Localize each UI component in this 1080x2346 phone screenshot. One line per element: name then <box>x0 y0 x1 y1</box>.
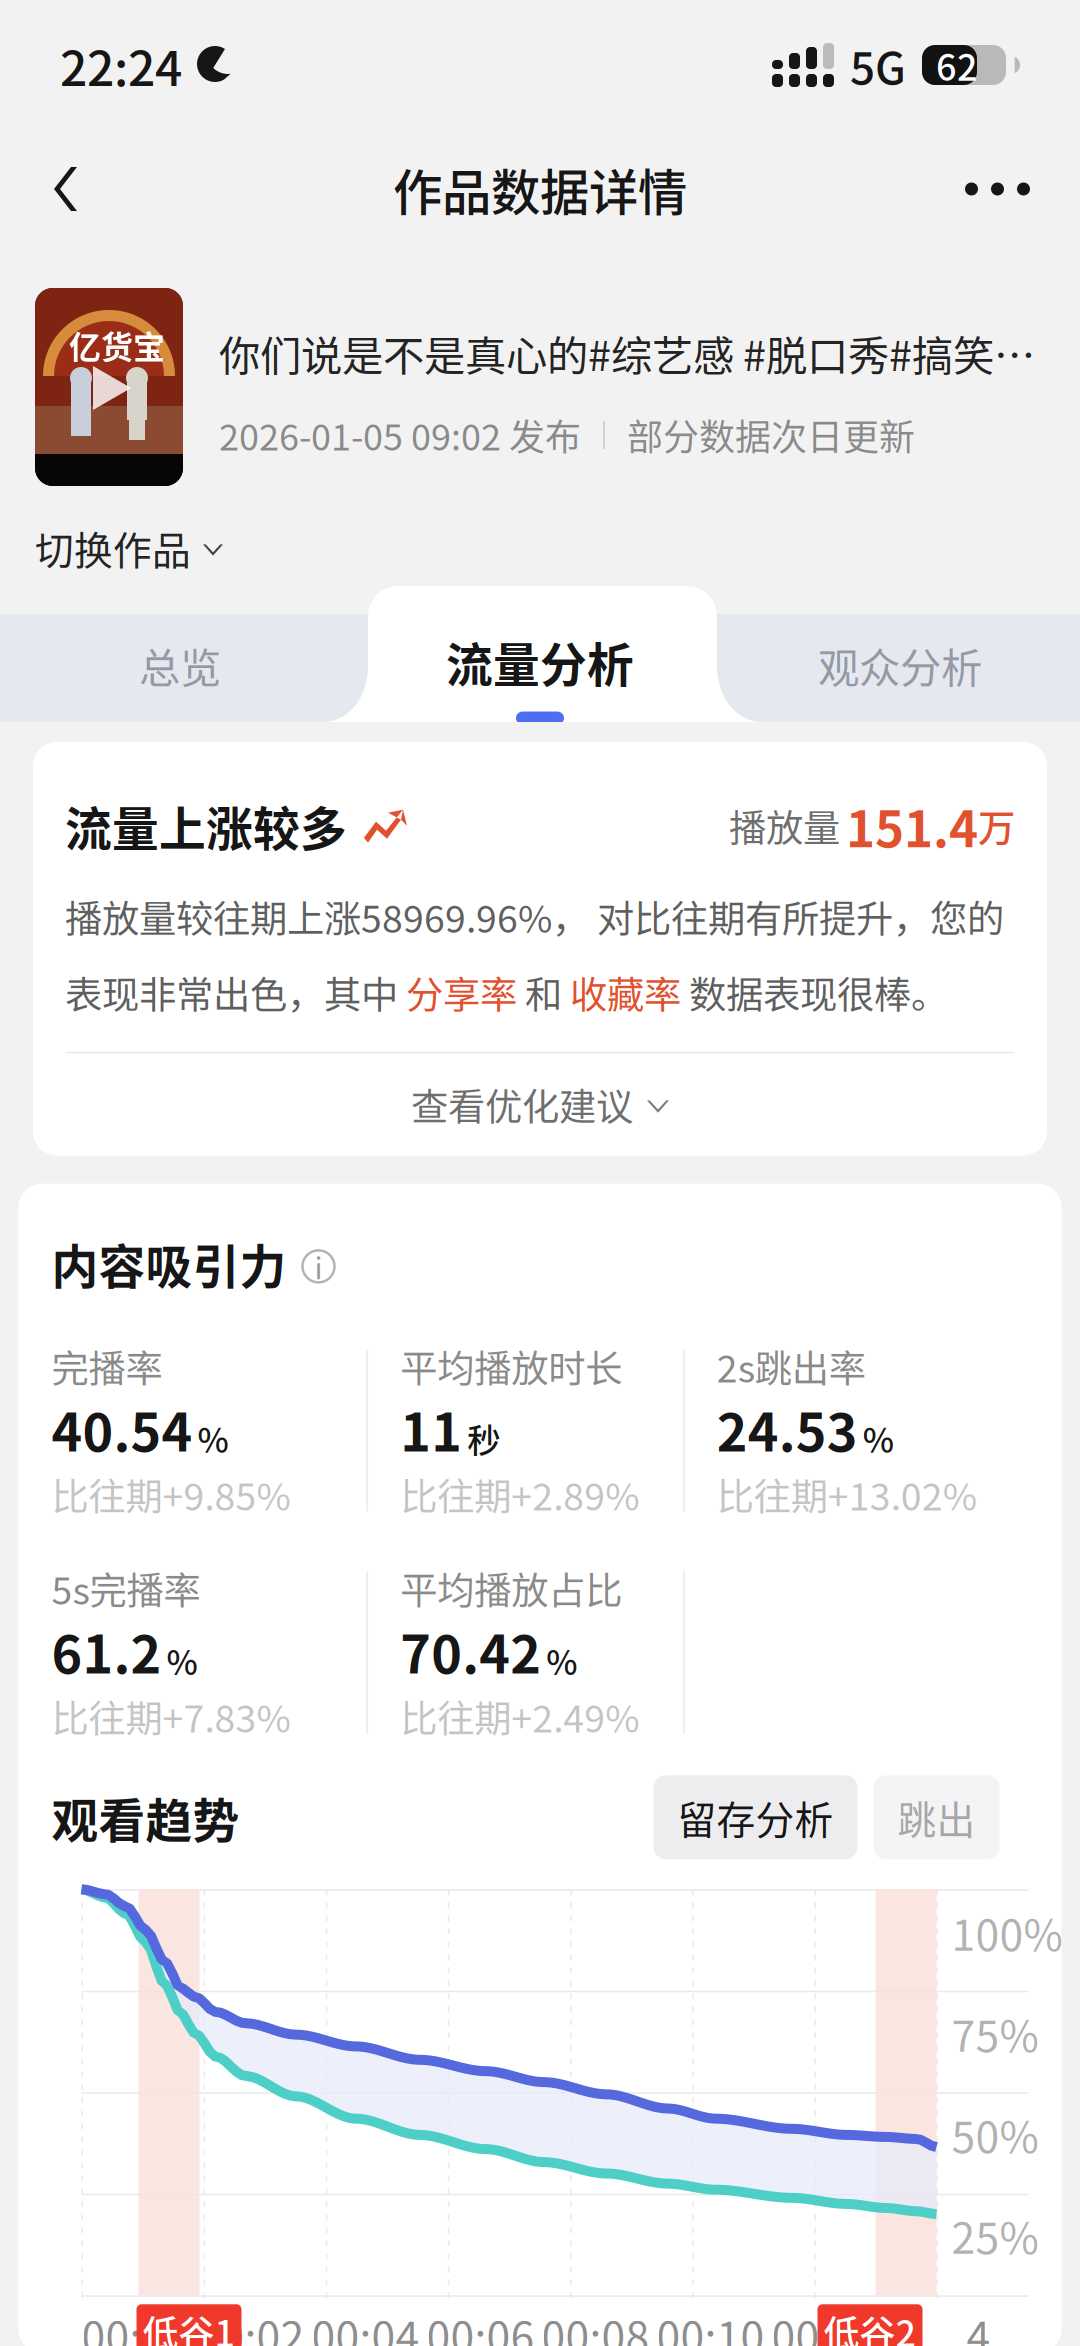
staticText: 24.53 <box>717 1391 858 1466</box>
button[interactable]: 查看优化建议 <box>65 1053 1015 1156</box>
staticText: 151.4 <box>846 790 978 861</box>
staticText: 和 <box>517 965 570 1020</box>
staticText: 秒 <box>467 1414 500 1462</box>
staticText: 比往期+2.89% <box>400 1467 639 1521</box>
staticText: 00:12 <box>771 2303 879 2346</box>
staticText: 22:24 <box>60 30 182 100</box>
staticText: 播放量 <box>729 799 840 853</box>
staticText: 你们说是不是真心的#综艺感 #脱口秀#搞笑… <box>219 323 1035 383</box>
staticText: 比往期+7.83% <box>51 1689 290 1743</box>
staticText: % <box>166 1636 197 1685</box>
staticText: 50% <box>951 2103 1038 2165</box>
staticText: 跳出 <box>897 1789 975 1845</box>
staticText: 00:04 <box>311 2303 419 2346</box>
staticText: 观众分析 <box>818 635 982 695</box>
staticText: 平均播放占比 <box>400 1561 622 1615</box>
staticText: 62 <box>936 39 978 91</box>
staticText: 表现非常出色，其中 <box>65 965 406 1020</box>
button[interactable]: Video thumbnail <box>35 288 183 486</box>
staticText: 5s完播率 <box>51 1561 200 1615</box>
staticText: 00:08 <box>541 2303 649 2346</box>
staticText: 低谷2 <box>823 2305 916 2346</box>
staticText: 完播率 <box>51 1339 162 1393</box>
staticText: 100% <box>951 1901 1062 1963</box>
staticText: 低谷1 <box>142 2305 235 2346</box>
staticText: 70.42 <box>400 1613 541 1688</box>
staticText: 切换作品 <box>35 520 191 576</box>
staticText: 61.2 <box>51 1613 161 1688</box>
staticText: 比往期+9.85% <box>51 1467 290 1521</box>
staticText: 40.54 <box>51 1391 192 1466</box>
staticText: 00:00 <box>81 2303 189 2346</box>
staticText: 比往期+13.02% <box>717 1467 977 1521</box>
staticText: 比往期+2.49% <box>400 1689 639 1743</box>
staticText: 观看趋势 <box>51 1783 239 1851</box>
staticText: 查看优化建议 <box>411 1077 633 1132</box>
staticText: 亿货宝 <box>69 322 165 368</box>
staticText: 25% <box>951 2204 1038 2266</box>
staticText: 11 <box>400 1391 462 1466</box>
staticText: 5G <box>850 33 906 97</box>
staticText: 2026-01-05 09:02 发布 <box>219 409 581 461</box>
staticText: 数据表现很棒。 <box>681 965 948 1020</box>
staticText: 总览 <box>139 635 221 695</box>
button[interactable]: Back <box>26 141 108 237</box>
staticText: 分享率 <box>406 965 517 1020</box>
staticText: 00:06 <box>426 2303 534 2346</box>
button[interactable]: 流量分析 <box>360 586 720 743</box>
staticText: % <box>546 1636 577 1685</box>
staticText: 作品数据详情 <box>393 153 687 225</box>
button[interactable]: 切换作品 <box>35 510 223 586</box>
staticText: 4 <box>966 2303 990 2346</box>
staticText: 内容吸引力 <box>51 1230 286 1297</box>
staticText: 00:02 <box>196 2303 304 2346</box>
button[interactable]: 跳出 <box>873 1775 999 1859</box>
staticText: 00:10 <box>656 2303 764 2346</box>
staticText: 收藏率 <box>570 965 681 1020</box>
staticText: 流量分析 <box>446 628 634 696</box>
staticText: % <box>863 1414 894 1462</box>
button[interactable]: 总览 <box>0 589 360 739</box>
staticText: 部分数据次日更新 <box>627 409 915 461</box>
button[interactable]: 观众分析 <box>720 589 1080 739</box>
staticText: 万 <box>978 799 1015 853</box>
button[interactable]: More options <box>941 148 1054 229</box>
staticText: 播放量较往期上涨58969.96%， 对比往期有所提升，您的 <box>65 889 1004 943</box>
staticText: 2s跳出率 <box>717 1339 866 1393</box>
staticText: 留存分析 <box>677 1789 833 1845</box>
staticText: i <box>314 1245 322 1288</box>
staticText: 75% <box>951 2002 1038 2064</box>
staticText: 平均播放时长 <box>400 1339 622 1393</box>
button[interactable]: 留存分析 <box>653 1775 857 1859</box>
staticText: % <box>197 1414 228 1462</box>
staticText: 流量上涨较多 <box>65 792 347 859</box>
